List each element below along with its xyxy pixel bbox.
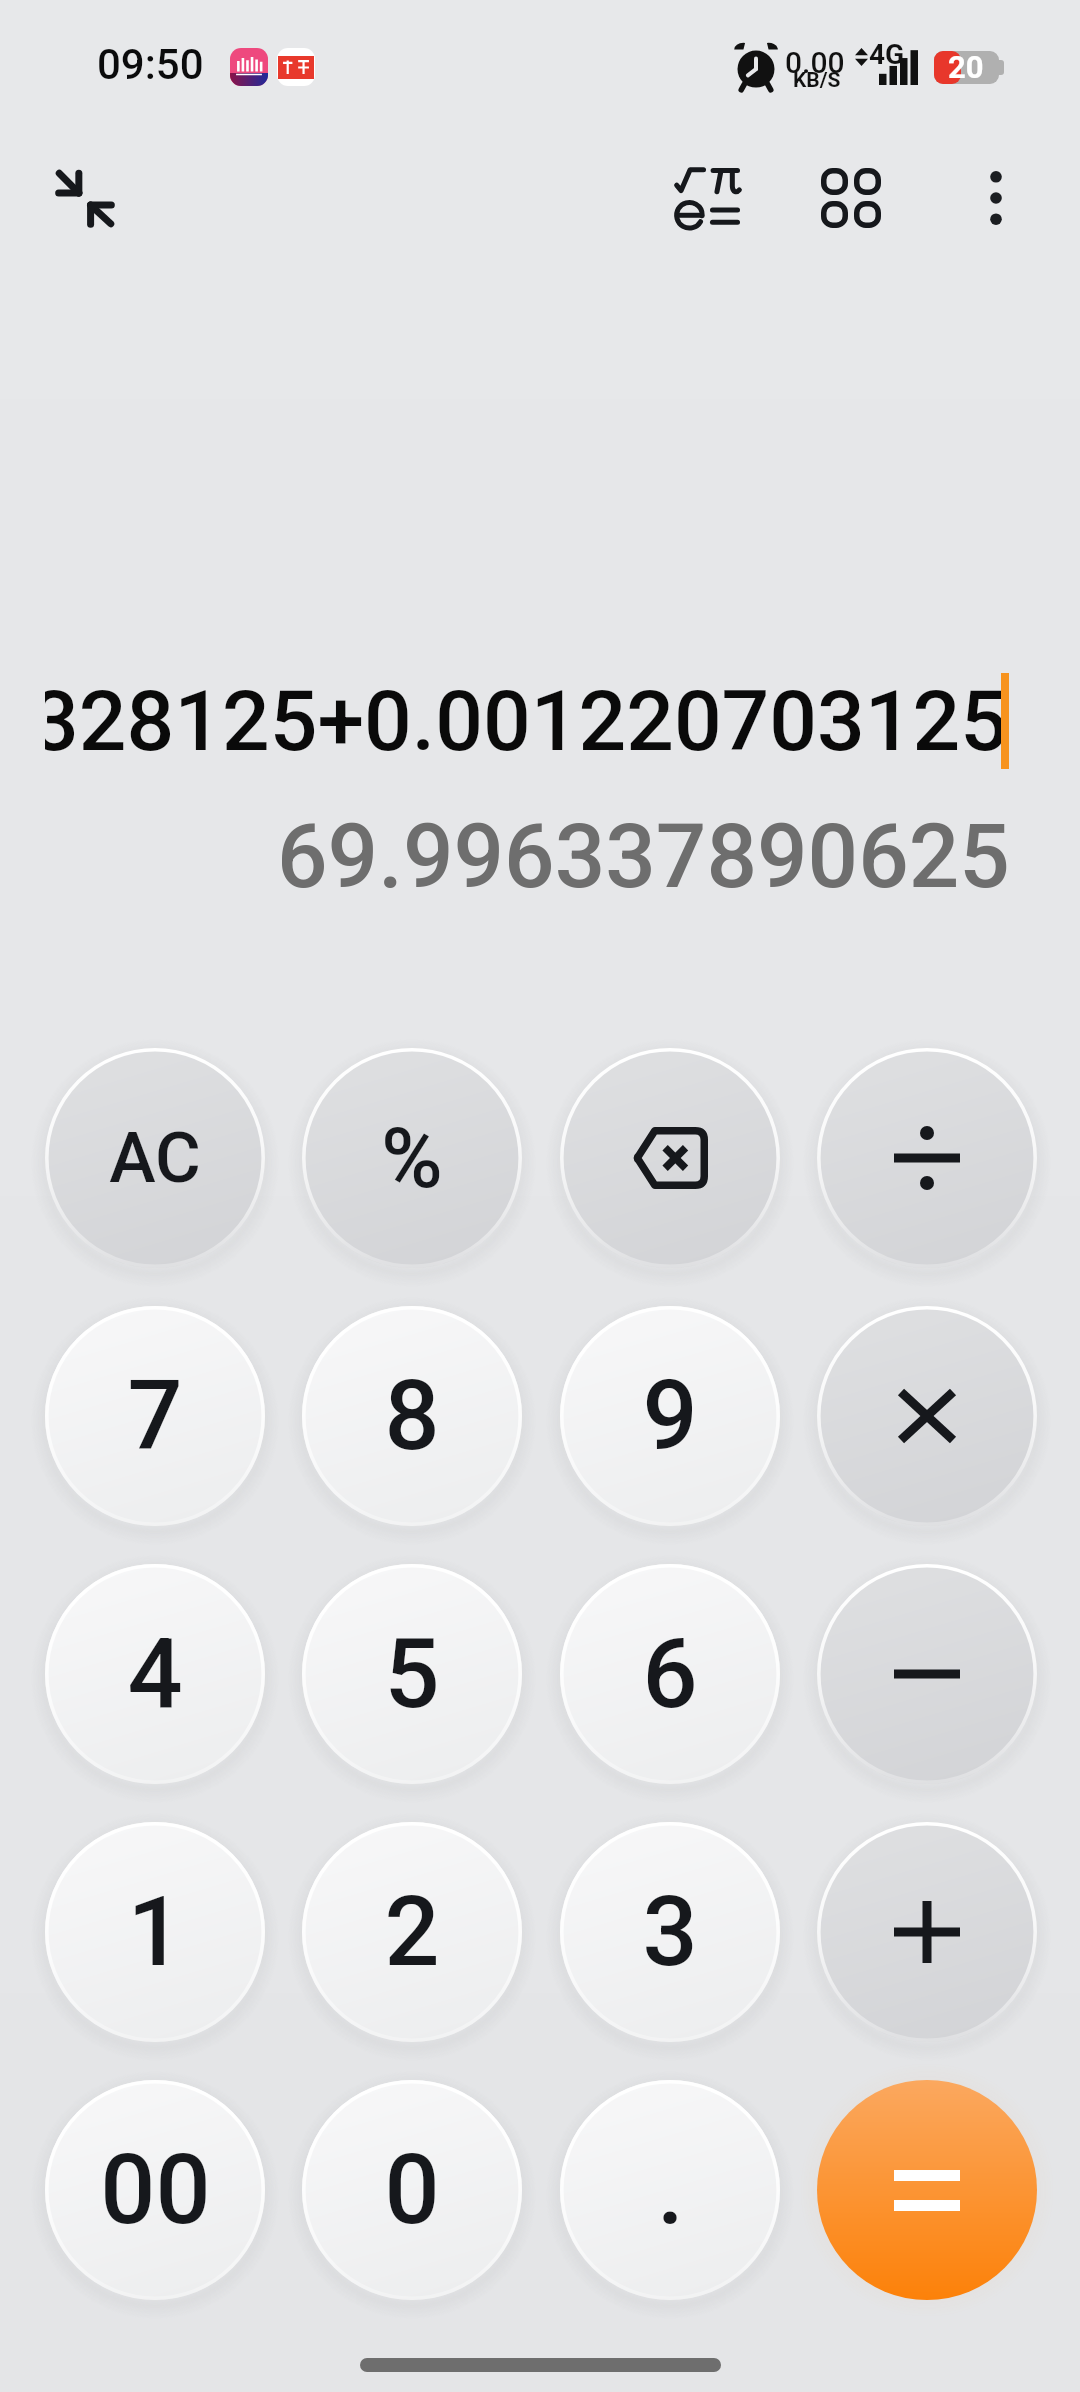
button[interactable]: Add [801, 1806, 1053, 2058]
staticText: 9 [642, 1359, 698, 1473]
staticText: AC [109, 1117, 201, 1199]
button[interactable]: 9 [544, 1290, 796, 1542]
staticText: 0.00 [785, 45, 845, 80]
staticText: 4G [869, 38, 905, 71]
button[interactable]: Divide [801, 1032, 1053, 1284]
button[interactable]: More options [944, 146, 1048, 250]
button[interactable]: Multiply [801, 1290, 1053, 1542]
staticText: 2 [384, 1875, 440, 1989]
staticText: 1 [127, 1875, 183, 1989]
staticText: 0 [384, 2133, 440, 2247]
button[interactable]: Collapse [33, 146, 137, 250]
staticText: 7 [127, 1359, 183, 1473]
staticText: 09:50 [97, 40, 204, 89]
button[interactable]: 5 [286, 1548, 538, 1800]
staticText: 328125+0.001220703125 [45, 672, 1009, 770]
staticText: 3 [642, 1875, 698, 1989]
button[interactable]: % [286, 1032, 538, 1284]
button[interactable]: 00 [29, 2064, 281, 2316]
staticText: % [381, 1109, 443, 1207]
button[interactable]: Scientific mode [656, 146, 760, 250]
staticText: 69.996337890625 [277, 804, 1010, 908]
button[interactable]: 3 [544, 1806, 796, 2058]
button[interactable]: 4 [29, 1548, 281, 1800]
staticText: . [657, 2133, 684, 2247]
button[interactable]: AC [29, 1032, 281, 1284]
staticText: 4 [127, 1617, 183, 1731]
staticText: 6 [642, 1617, 698, 1731]
button[interactable]: 6 [544, 1548, 796, 1800]
button[interactable]: . [544, 2064, 796, 2316]
staticText: 5 [384, 1617, 440, 1731]
staticText: 00 [100, 2133, 211, 2247]
staticText: KB/S [793, 68, 841, 93]
button[interactable]: 1 [29, 1806, 281, 2058]
button[interactable]: Unit converter [799, 146, 903, 250]
button[interactable]: 0 [286, 2064, 538, 2316]
button[interactable]: 8 [286, 1290, 538, 1542]
button[interactable]: Backspace [544, 1032, 796, 1284]
button[interactable]: 7 [29, 1290, 281, 1542]
button[interactable]: 2 [286, 1806, 538, 2058]
staticText: 20 [948, 49, 984, 82]
staticText: 8 [384, 1359, 440, 1473]
button[interactable]: Subtract [801, 1548, 1053, 1800]
button[interactable]: Equals [801, 2064, 1053, 2316]
